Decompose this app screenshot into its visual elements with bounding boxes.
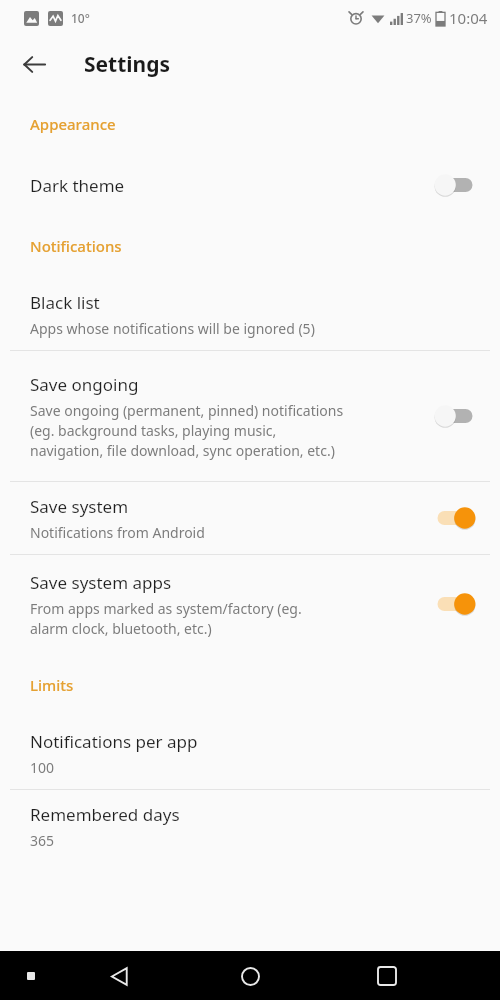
staticText: 10° <box>71 10 90 26</box>
staticText: Apps whose notifications will be ignored… <box>30 319 315 338</box>
button[interactable]: Menu indicator <box>22 967 40 985</box>
button[interactable]: Dark theme <box>0 156 500 214</box>
staticText: Notifications <box>30 236 500 256</box>
staticText: Save ongoing <box>30 373 139 396</box>
staticText: Save system apps <box>30 571 172 594</box>
button[interactable]: On <box>432 590 478 618</box>
staticText: Limits <box>30 675 500 695</box>
staticText: Notifications from Android <box>30 523 205 542</box>
button[interactable]: Save ongoing <box>0 351 500 481</box>
button[interactable]: Notifications per app <box>0 717 500 789</box>
staticText: Dark theme <box>30 174 125 197</box>
staticText: Black list <box>30 291 100 314</box>
staticText: Remembered days <box>30 803 180 826</box>
staticText: 10:04 <box>449 8 488 28</box>
staticText: From apps marked as system/factory (eg. … <box>30 599 302 638</box>
staticText: 37% <box>406 9 432 27</box>
staticText: Save ongoing (permanent, pinned) notific… <box>30 401 344 460</box>
button[interactable]: Save system apps <box>0 555 500 653</box>
button[interactable]: On <box>432 504 478 532</box>
button[interactable]: Black list <box>0 278 500 350</box>
staticText: 100 <box>30 758 55 777</box>
button[interactable]: Back <box>98 955 140 997</box>
button[interactable]: Off <box>432 171 478 199</box>
button[interactable]: Recent apps <box>366 955 408 997</box>
button[interactable]: Save system <box>0 482 500 554</box>
button[interactable]: Remembered days <box>0 790 500 862</box>
staticText: 365 <box>30 831 55 850</box>
button[interactable]: Off <box>432 402 478 430</box>
staticText: Appearance <box>30 114 500 134</box>
staticText: Save system <box>30 495 129 518</box>
staticText: Notifications per app <box>30 730 198 753</box>
button[interactable]: Home <box>228 954 272 998</box>
button[interactable]: Back <box>12 42 56 86</box>
staticText: Settings <box>84 50 171 79</box>
